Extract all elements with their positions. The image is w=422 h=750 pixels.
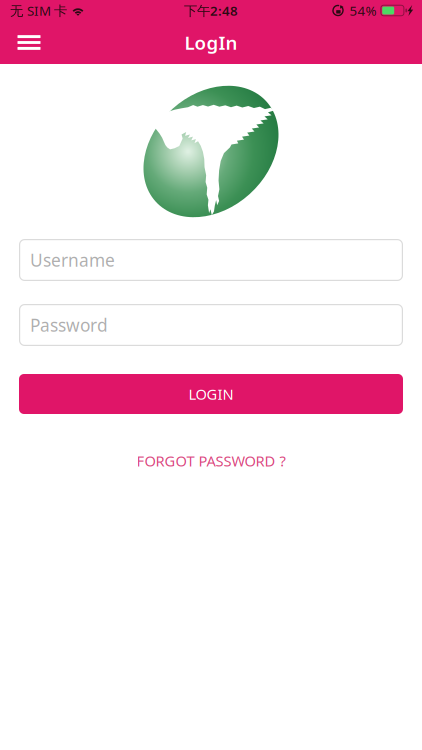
- button[interactable]: FORGOT PASSWORD ?: [116, 414, 305, 480]
- staticText: Password: [30, 313, 108, 336]
- staticText: 无 SIM 卡: [10, 2, 67, 19]
- staticText: LogIn: [184, 30, 237, 55]
- staticText: 下午2:48: [184, 2, 238, 19]
- button[interactable]: Menu: [6, 21, 52, 64]
- button[interactable]: LOGIN: [19, 374, 403, 414]
- staticText: 54%: [349, 2, 376, 19]
- staticText: LOGIN: [188, 384, 233, 404]
- staticText: Username: [30, 248, 115, 271]
- staticText: FORGOT PASSWORD ?: [136, 451, 285, 470]
